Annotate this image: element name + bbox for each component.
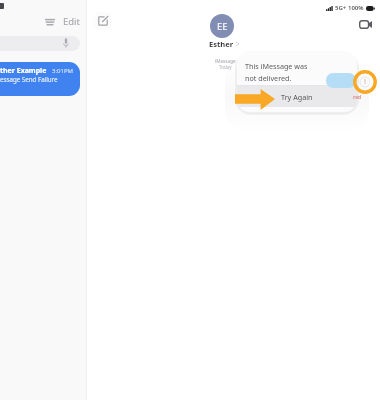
staticText: Esther [209,39,234,49]
staticText: 5G+ [335,4,347,12]
staticText: red [353,94,362,101]
staticText: ! [364,77,366,87]
button[interactable]: ther Example [0,62,80,96]
button[interactable]: EE [210,14,234,38]
button[interactable]: Filter [42,14,58,30]
staticText: EE [217,20,228,33]
staticText: 3:01PM [52,67,73,75]
staticText: iMessage [215,58,236,64]
staticText: This iMessage was [245,61,308,71]
staticText: not delivered. [245,73,292,83]
staticText: Edit [63,15,81,28]
button[interactable]: Esther [209,39,239,49]
button[interactable]: New message [94,12,112,30]
button[interactable] [0,36,80,51]
staticText: ther Example [0,66,47,76]
staticText: essage Send Failure [0,75,58,83]
button[interactable]: Try Again [237,86,357,107]
button[interactable]: FaceTime video call [357,16,373,32]
staticText: 100% [348,4,364,12]
staticText: Today [219,64,232,70]
button[interactable]: Edit [62,15,82,28]
staticText: Try Again [281,92,313,102]
